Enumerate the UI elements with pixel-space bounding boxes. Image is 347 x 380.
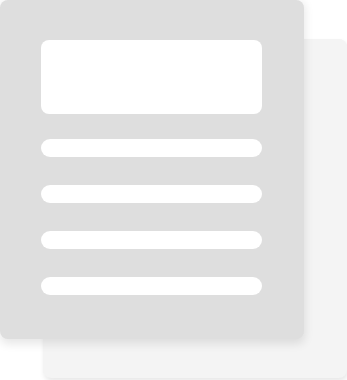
button[interactable]: Duplicate document [43,39,347,378]
button[interactable]: Document [0,0,304,339]
